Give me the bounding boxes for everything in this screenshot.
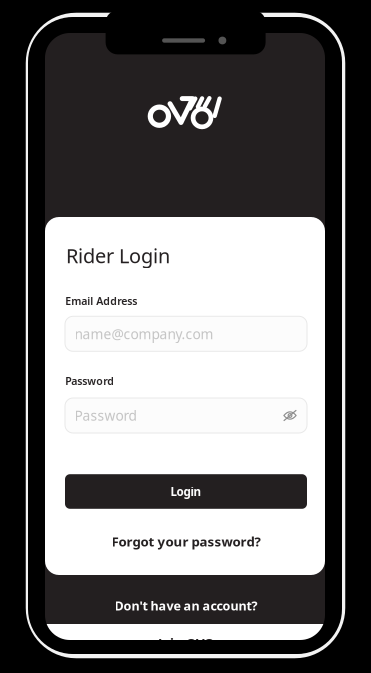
staticText: Password	[75, 406, 137, 425]
staticText: Don't have an account?	[114, 597, 257, 614]
button[interactable]: Login	[65, 474, 307, 509]
staticText: Join OVO	[158, 634, 214, 652]
staticText: Rider Login	[66, 242, 170, 269]
button[interactable]: Forgot your password?	[65, 528, 307, 554]
staticText: Email Address	[65, 294, 137, 308]
button[interactable]: Don't have an account?	[65, 593, 307, 619]
staticText: name@company.com	[75, 324, 214, 343]
staticText: Password	[65, 374, 114, 388]
staticText: Login	[170, 484, 201, 499]
staticText: Forgot your password?	[111, 532, 260, 550]
